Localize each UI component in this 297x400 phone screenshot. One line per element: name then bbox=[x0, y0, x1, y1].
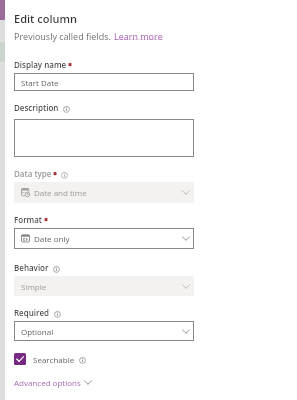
staticText: Start Date bbox=[21, 77, 59, 88]
staticText: Advanced options bbox=[14, 377, 81, 388]
staticText: Optional bbox=[21, 326, 54, 337]
staticText: Previously called fields. bbox=[14, 30, 114, 42]
button[interactable]: Display name input bbox=[14, 73, 194, 91]
staticText: Description bbox=[14, 102, 59, 113]
button[interactable]: Learn more bbox=[114, 30, 163, 42]
staticText: Behavior bbox=[14, 262, 49, 273]
button[interactable]: Data type dropdown bbox=[14, 182, 194, 203]
staticText: Format bbox=[14, 214, 43, 225]
button[interactable]: Description input bbox=[14, 119, 194, 157]
staticText: Simple bbox=[21, 281, 47, 292]
staticText: Edit column bbox=[14, 11, 77, 26]
staticText: Date and time bbox=[34, 187, 87, 198]
button[interactable]: Required dropdown bbox=[14, 321, 194, 341]
staticText: Required bbox=[14, 307, 50, 318]
button[interactable]: Format dropdown bbox=[14, 228, 194, 249]
staticText: Display name bbox=[14, 59, 67, 70]
button[interactable]: Advanced options bbox=[14, 377, 92, 388]
staticText: Date only bbox=[34, 233, 70, 244]
staticText: Searchable bbox=[33, 354, 75, 365]
button[interactable]: Behavior dropdown bbox=[14, 276, 194, 296]
staticText: Data type bbox=[14, 168, 52, 179]
button[interactable]: Searchable bbox=[14, 353, 86, 365]
